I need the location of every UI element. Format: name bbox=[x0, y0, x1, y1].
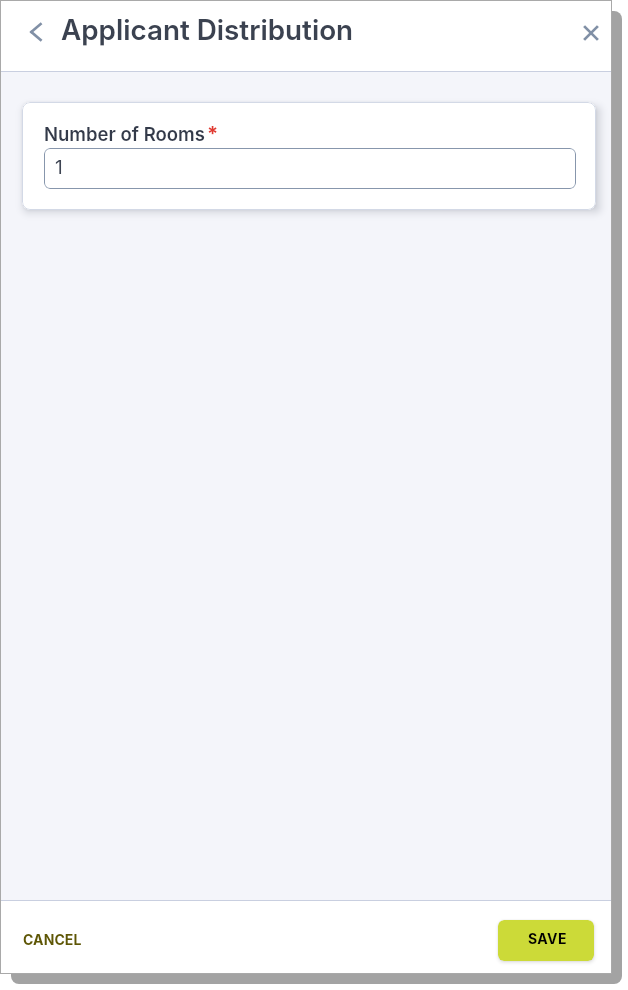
button[interactable]: SAVE bbox=[498, 920, 594, 961]
button[interactable]: Back bbox=[18, 14, 53, 49]
button[interactable]: 1 bbox=[44, 148, 576, 189]
staticText: Number of Rooms bbox=[44, 123, 205, 145]
button[interactable]: CANCEL bbox=[12, 923, 93, 956]
staticText: Applicant Distribution bbox=[61, 13, 354, 47]
staticText: SAVE bbox=[528, 930, 567, 947]
staticText: 1 bbox=[55, 156, 63, 179]
staticText: * bbox=[207, 122, 219, 146]
staticText: CANCEL bbox=[23, 931, 82, 948]
button[interactable]: Close bbox=[573, 15, 608, 50]
